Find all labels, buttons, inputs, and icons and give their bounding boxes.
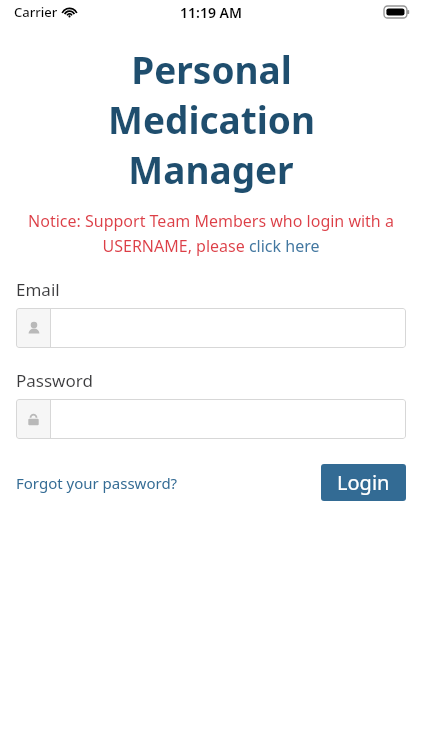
button[interactable]: Notice: Support Team Members who login w… (0, 210, 422, 256)
button[interactable]: Login (321, 464, 406, 501)
staticText: Password (16, 369, 93, 392)
staticText: Medication (108, 94, 315, 144)
button[interactable]: Forgot your password? (16, 469, 178, 497)
staticText: Login (337, 469, 390, 496)
staticText: Email (16, 278, 60, 301)
staticText: Carrier (14, 3, 58, 21)
staticText: Forgot your password? (16, 473, 178, 493)
staticText: Manager (128, 144, 294, 194)
staticText: Personal (131, 44, 292, 94)
button[interactable]: Password input field (16, 399, 406, 439)
staticText: Notice: Support Team Members who login w… (12, 210, 410, 256)
staticText: 11:19 AM (180, 3, 242, 22)
button[interactable]: Email input field (16, 308, 406, 348)
